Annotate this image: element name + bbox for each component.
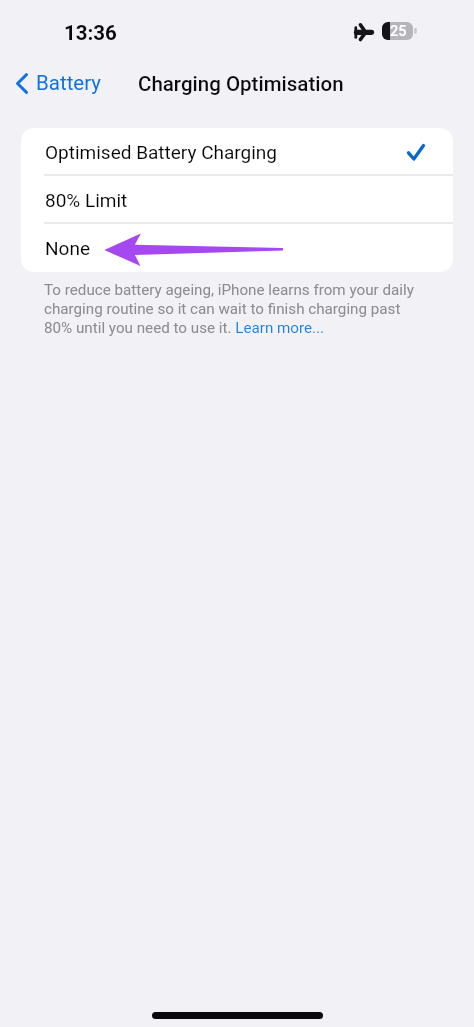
other: Aeroplane mode (354, 23, 374, 41)
staticText: Optimised Battery Charging (45, 141, 278, 163)
other: Back to Battery (16, 73, 28, 94)
button[interactable]: Optimised Battery Charging (21, 128, 453, 176)
staticText: 13:36 (64, 21, 117, 45)
button[interactable]: None (21, 224, 453, 272)
other: Selected (407, 144, 425, 161)
staticText: Charging Optimisation (138, 72, 344, 96)
button[interactable]: 80% Limit (21, 176, 453, 224)
staticText: Battery (36, 71, 102, 95)
other: Annotation arrow (0, 0, 474, 1027)
staticText: 80% Limit (45, 189, 128, 211)
staticText: 25 (390, 23, 407, 40)
staticText: To reduce battery ageing, iPhone learns … (44, 281, 414, 337)
staticText: None (45, 237, 90, 259)
button[interactable]: Back to Battery (16, 71, 102, 95)
